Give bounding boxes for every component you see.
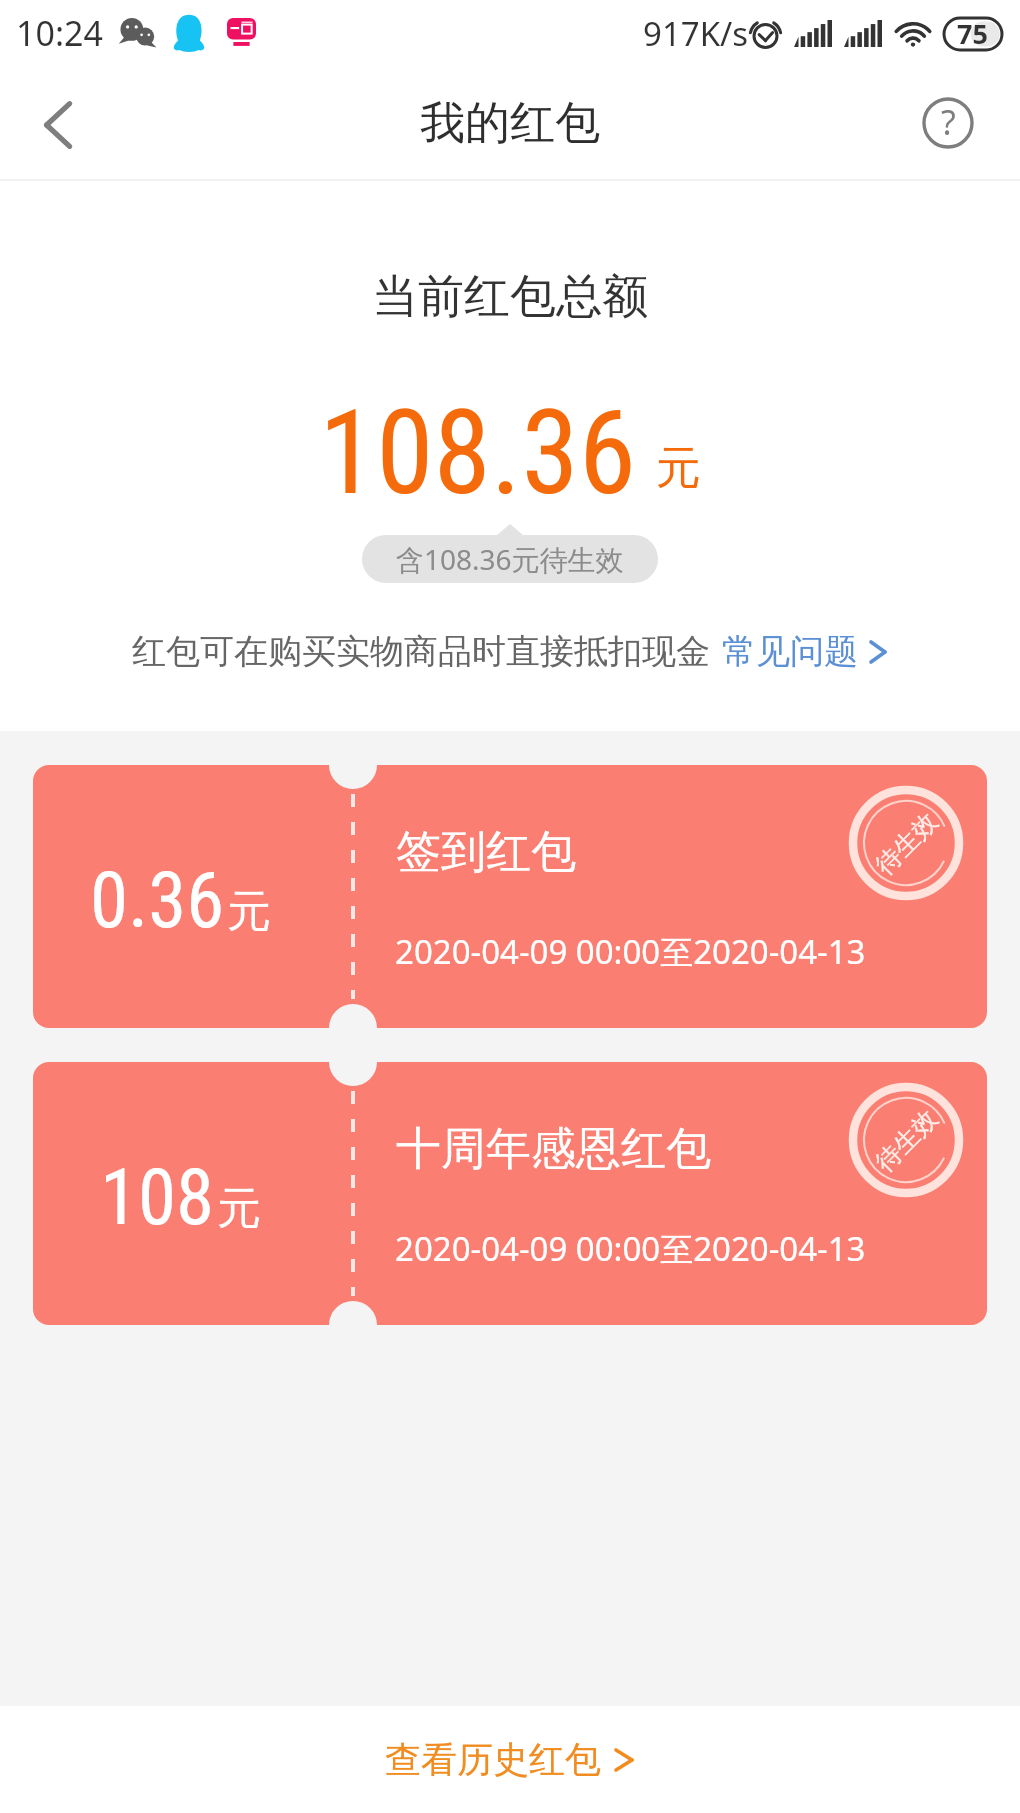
- staticText: 917K/s: [643, 11, 749, 56]
- button[interactable]: 查看历史红包: [0, 1706, 1020, 1813]
- staticText: 常见问题: [722, 630, 858, 673]
- staticText: 十周年感恩红包: [396, 1121, 711, 1178]
- staticText: 当前红包总额: [372, 268, 648, 326]
- staticText: 签到红包: [396, 824, 576, 881]
- staticText: ?: [941, 99, 956, 145]
- button[interactable]: Back: [0, 66, 104, 180]
- staticText: 2020-04-09 00:00至2020-04-13: [395, 1226, 866, 1271]
- staticText: 元: [227, 884, 271, 939]
- staticText: 10:24: [16, 10, 103, 56]
- staticText: 含108.36元待生效: [396, 540, 624, 578]
- button[interactable]: 常见问题: [722, 630, 888, 673]
- staticText: 2020-04-09 00:00至2020-04-13: [395, 929, 866, 974]
- staticText: 元: [217, 1181, 261, 1236]
- staticText: 元: [656, 440, 701, 497]
- staticText: 0.36: [90, 856, 225, 946]
- button[interactable]: Help: [910, 66, 1020, 180]
- staticText: 108.36: [319, 385, 636, 521]
- staticText: 红包可在购买实物商品时直接抵扣现金: [132, 630, 710, 673]
- staticText: 75: [957, 15, 988, 52]
- staticText: 待生效: [869, 1103, 944, 1178]
- staticText: 查看历史红包: [385, 1737, 601, 1782]
- staticText: 待生效: [869, 806, 944, 881]
- staticText: 108: [100, 1153, 215, 1243]
- button[interactable]: 0.36: [33, 765, 987, 1028]
- button[interactable]: 108: [33, 1062, 987, 1325]
- staticText: 我的红包: [420, 95, 600, 152]
